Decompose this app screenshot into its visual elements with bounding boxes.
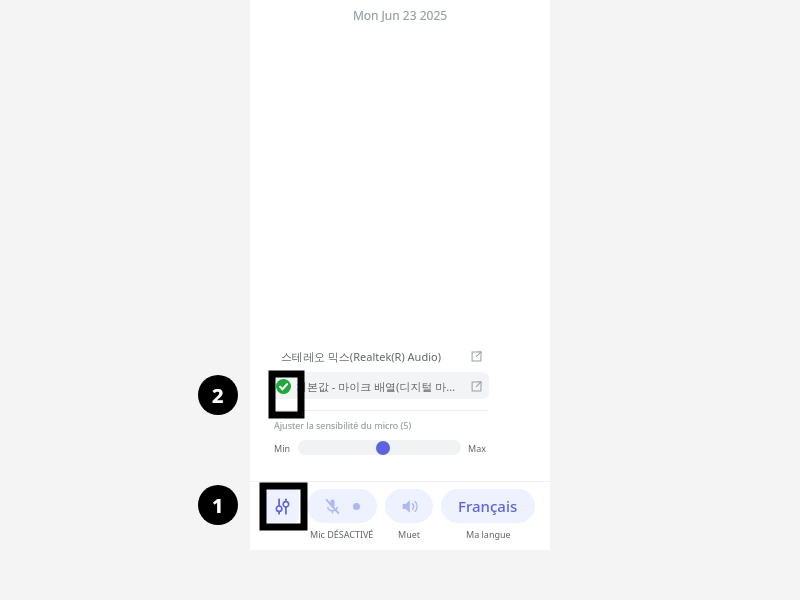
staticText: 기본값 - 마이크 배열(디지털 마... — [296, 379, 464, 394]
button[interactable]: Microphone sensitivity — [298, 440, 461, 455]
button[interactable]: 스테레오 믹스(Realtek(R) Audio) — [271, 342, 489, 369]
button[interactable]: Open device settings — [468, 348, 484, 364]
staticText: Français — [458, 496, 518, 516]
button[interactable]: Français — [441, 489, 535, 523]
button[interactable]: 기본값 - 마이크 배열(디지털 마... — [271, 372, 489, 399]
staticText: Ajuster la sensibilité du micro (5) — [274, 419, 412, 431]
staticText: Mic DÉSACTIVÉ — [310, 528, 374, 540]
staticText: Min — [274, 442, 291, 454]
button[interactable]: Microphone off — [307, 489, 377, 523]
staticText: Mon Jun 23 2025 — [250, 7, 550, 23]
staticText: Max — [468, 442, 486, 454]
staticText: 스테레오 믹스(Realtek(R) Audio) — [281, 349, 464, 364]
staticText: 2 — [212, 382, 224, 409]
button[interactable]: Audio settings — [265, 489, 299, 523]
button[interactable]: Open device settings — [468, 378, 484, 394]
button[interactable]: Mute — [385, 489, 433, 523]
staticText: Muet — [398, 528, 421, 540]
staticText: 1 — [212, 492, 224, 519]
staticText: Ma langue — [466, 528, 511, 540]
